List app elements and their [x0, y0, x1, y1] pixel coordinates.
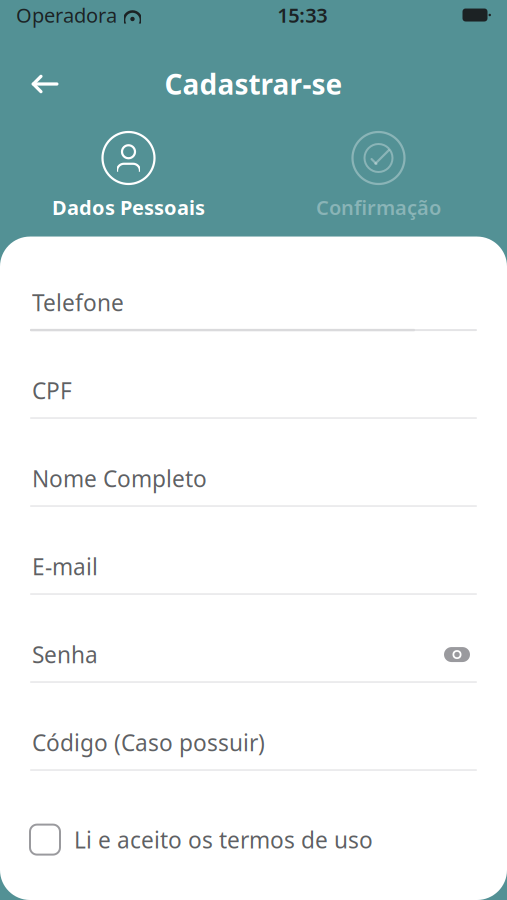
staticText: E-mail [32, 551, 98, 582]
button[interactable]: Back [18, 61, 72, 107]
staticText: Cadastrar-se [164, 65, 342, 103]
staticText: Operadora [16, 2, 117, 28]
button[interactable]: Show password [439, 642, 475, 668]
staticText: Telefone [32, 287, 124, 318]
staticText: Li e aceito os termos de uso [74, 825, 373, 855]
staticText: 15:33 [277, 2, 327, 28]
staticText: Nome Completo [32, 463, 207, 494]
staticText: Código (Caso possuir) [32, 727, 265, 758]
staticText: Dados Pessoais [52, 194, 205, 221]
staticText: Senha [32, 639, 98, 670]
staticText: CPF [32, 375, 72, 406]
staticText: Confirmação [316, 194, 441, 221]
button[interactable]: Li e aceito os termos de uso [30, 819, 477, 861]
